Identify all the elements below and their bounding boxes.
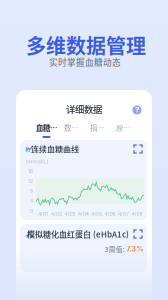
staticText: 8 (30, 188, 33, 194)
staticText: 实时掌握血糖动态 (49, 56, 121, 68)
staticText: 7.3% (126, 245, 143, 253)
staticText: 模拟糖化血红蛋白 (eHbA1c) (27, 228, 129, 240)
staticText: 4/04 (78, 211, 89, 217)
staticText: 原始表格 (116, 122, 135, 133)
staticText: 指血表格 (90, 122, 109, 133)
staticText: 血糖综合 (36, 122, 57, 133)
staticText: 4/01 (38, 211, 48, 217)
staticText: 16 (28, 168, 33, 174)
staticText: 0 (30, 208, 33, 214)
staticText: 连续血糖曲线 (31, 143, 79, 155)
staticText: 4/06 (105, 211, 116, 217)
button[interactable]: 原始表格 (116, 122, 135, 138)
staticText: 4 (30, 198, 33, 204)
button[interactable]: 指血表格 (90, 122, 109, 138)
staticText: 详细数据 (66, 102, 102, 116)
staticText: 数据日志 (64, 122, 83, 133)
staticText: 12 (28, 178, 33, 184)
staticText: 4/07 (118, 211, 129, 217)
staticText: 4/03 (64, 211, 75, 217)
button[interactable]: 血糖综合 (36, 122, 57, 138)
button[interactable]: Expand (131, 227, 145, 241)
staticText: 3周值: (105, 244, 125, 254)
staticText: ? (135, 105, 139, 115)
staticText: 多维数据管理 (26, 30, 146, 59)
staticText: 4/05 (91, 211, 102, 217)
staticText: 4/08 (131, 211, 142, 217)
button[interactable]: Help (129, 102, 144, 117)
button[interactable]: Expand chart (131, 142, 145, 156)
button[interactable]: 数据日志 (64, 122, 83, 138)
staticText: 4/02 (51, 211, 62, 217)
staticText: (mmol/L) (25, 158, 48, 165)
